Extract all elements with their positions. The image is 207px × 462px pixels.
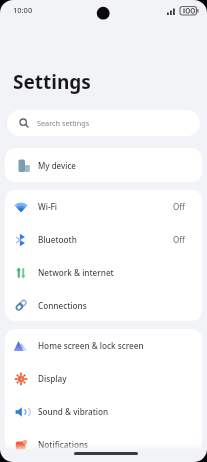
staticText: Network & internet — [38, 267, 114, 278]
staticText: Wi-Fi — [38, 201, 58, 212]
button[interactable]: Connections — [5, 289, 202, 321]
staticText: 10:00 — [13, 5, 33, 15]
staticText: Settings — [13, 69, 91, 95]
button[interactable]: Display — [5, 362, 202, 395]
button[interactable]: Home screen & lock screen — [5, 329, 202, 362]
staticText: Off — [173, 201, 185, 212]
staticText: Off — [173, 234, 185, 245]
button[interactable]: Network & internet — [5, 256, 202, 289]
staticText: Connections — [38, 300, 87, 311]
staticText: Sound & vibration — [38, 406, 109, 417]
button[interactable]: Notifications — [5, 428, 202, 461]
button[interactable]: Bluetooth — [5, 223, 202, 256]
button[interactable]: Search settings — [7, 110, 200, 136]
staticText: Notifications — [38, 439, 88, 450]
staticText: Display — [38, 373, 67, 384]
staticText: My device — [38, 160, 76, 171]
staticText: Search settings — [37, 118, 90, 128]
staticText: Bluetooth — [38, 234, 77, 245]
button[interactable]: My device — [5, 148, 202, 182]
staticText: Home screen & lock screen — [38, 340, 144, 351]
button[interactable]: Sound & vibration — [5, 395, 202, 428]
button[interactable]: Wi-Fi — [5, 190, 202, 223]
